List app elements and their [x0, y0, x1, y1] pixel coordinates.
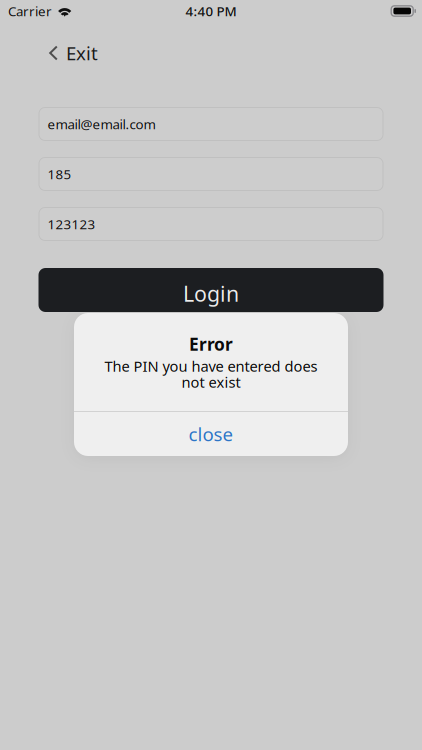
- staticText: The PIN you have entered does: [104, 356, 317, 376]
- staticText: email@email.com: [47, 115, 155, 133]
- staticText: Carrier: [8, 2, 52, 20]
- staticText: Login: [183, 279, 239, 308]
- button[interactable]: close: [74, 412, 348, 456]
- staticText: 185: [47, 165, 71, 183]
- staticText: Error: [189, 332, 233, 355]
- button[interactable]: Exit: [38, 27, 106, 69]
- staticText: 123123: [47, 215, 95, 233]
- button[interactable]: Login: [38, 268, 383, 312]
- staticText: not exist: [181, 372, 240, 392]
- staticText: 4:40 PM: [185, 2, 236, 20]
- staticText: close: [188, 422, 233, 446]
- staticText: Exit: [66, 41, 98, 65]
